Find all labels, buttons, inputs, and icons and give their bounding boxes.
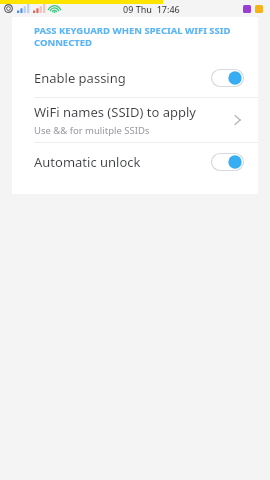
button[interactable]: Toggle (211, 153, 244, 171)
staticText: WiFi names (SSID) to apply (34, 103, 196, 121)
button[interactable]: WiFi names (SSID) to apply (12, 98, 258, 142)
other: Open (230, 111, 244, 129)
button[interactable]: Toggle (211, 69, 244, 87)
staticText: 09 Thu 17:46 (123, 3, 180, 15)
staticText: Enable passing (34, 69, 211, 87)
staticText: PASS KEYGUARD WHEN SPECIAL WIFI SSID CON… (34, 24, 244, 49)
staticText: Use && for mulitple SSIDs (34, 124, 150, 137)
button[interactable]: Automatic unlock (12, 143, 258, 181)
staticText: Automatic unlock (34, 153, 211, 171)
button[interactable]: Enable passing (12, 59, 258, 97)
